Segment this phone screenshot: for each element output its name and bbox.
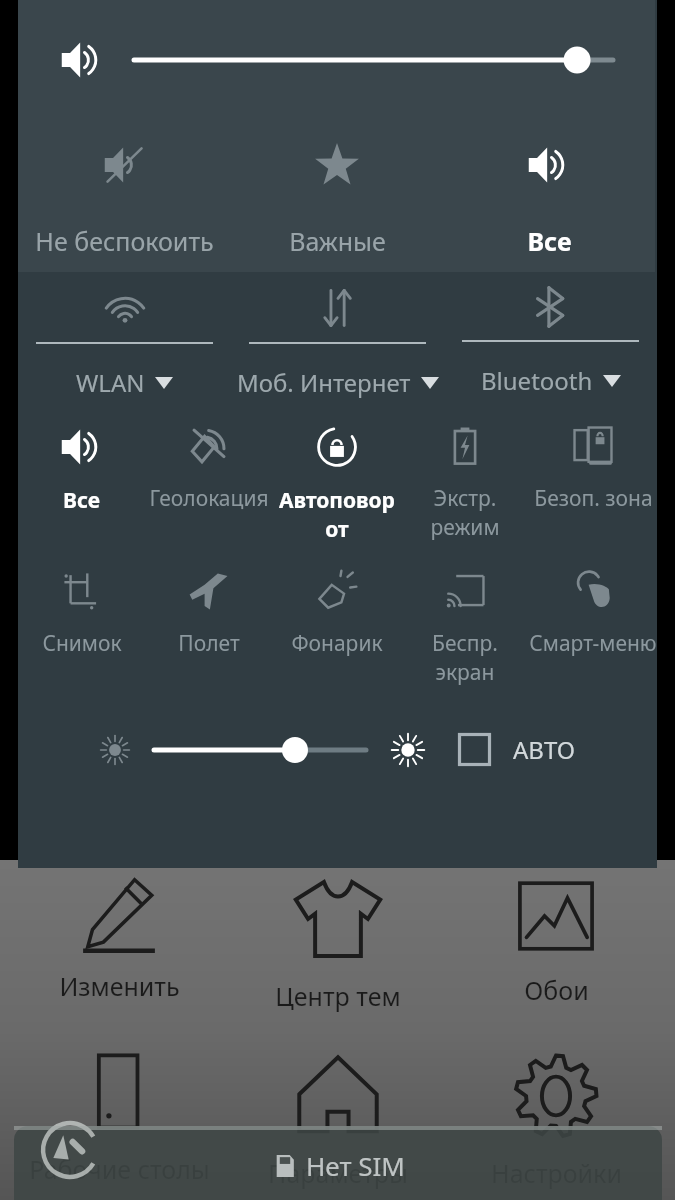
button[interactable] (154, 730, 366, 770)
staticText: Bluetooth (481, 364, 593, 397)
button[interactable]: Автоповорот (273, 402, 401, 547)
staticText: АВТО (513, 733, 576, 766)
button[interactable] (96, 731, 134, 769)
staticText: Рабочие столы (29, 1152, 210, 1186)
button[interactable]: АВТО (454, 727, 580, 772)
staticText: Фонарик (291, 629, 383, 658)
button[interactable]: Геолокация (145, 402, 273, 547)
staticText: Экстр. режим (401, 484, 529, 542)
button[interactable]: Изменить (19, 875, 219, 1003)
staticText: Важные (289, 224, 386, 258)
button[interactable]: Полет (145, 547, 273, 697)
staticText: Полет (178, 629, 240, 658)
staticText: Параметры (268, 1156, 408, 1190)
button[interactable]: Смарт-меню (529, 547, 657, 697)
staticText: Смарт-меню (529, 629, 657, 658)
button[interactable]: Безоп. зона (529, 402, 657, 547)
staticText: Изменить (59, 969, 180, 1003)
button[interactable]: Важные (231, 120, 443, 272)
button[interactable] (134, 38, 613, 82)
button[interactable]: Настройки (456, 1052, 656, 1190)
button[interactable]: Рабочие столы (19, 1052, 219, 1186)
staticText: Автоповорот (273, 486, 401, 544)
button[interactable]: Bluetooth (444, 272, 657, 402)
staticText: Обои (524, 973, 589, 1007)
button[interactable]: Экстр. режим (401, 402, 529, 547)
button[interactable]: Volume (56, 34, 108, 86)
staticText: Не беспокоить (35, 224, 214, 258)
staticText: Центр тем (275, 979, 401, 1013)
staticText: Нет SIM (306, 1148, 405, 1183)
button[interactable]: Беспр. экран (401, 547, 529, 697)
button[interactable]: WLAN (18, 272, 231, 402)
button[interactable]: Все (18, 402, 145, 547)
staticText: Безоп. зона (534, 484, 653, 513)
staticText: Геолокация (149, 484, 269, 513)
button[interactable]: Моб. Интернет (231, 272, 444, 402)
staticText: Снимок (42, 629, 122, 658)
button[interactable]: Все (443, 120, 655, 272)
button[interactable]: Не беспокоить (18, 120, 231, 272)
button[interactable] (388, 730, 428, 770)
button[interactable]: Обои (456, 875, 656, 1007)
button[interactable]: Параметры (238, 1052, 438, 1190)
staticText: Все (63, 486, 100, 515)
button[interactable]: Снимок (18, 547, 145, 697)
staticText: Беспр. экран (401, 629, 529, 687)
staticText: Моб. Интернет (237, 366, 411, 399)
staticText: Все (527, 224, 572, 258)
staticText: WLAN (76, 366, 145, 399)
button[interactable]: Фонарик (273, 547, 401, 697)
button[interactable]: Центр тем (238, 875, 438, 1013)
